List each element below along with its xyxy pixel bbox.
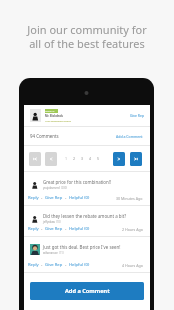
- staticText: Just got this deal. Best price I've seen…: [43, 244, 121, 250]
- button[interactable]: Helpful (0): [69, 262, 90, 268]
- staticText: wilsonaruze: [43, 251, 58, 255]
- button[interactable]: Add a Comment: [116, 134, 143, 139]
- staticText: Mr. Slickdeals: [45, 114, 63, 118]
- button[interactable]: Helpful (0): [69, 195, 90, 201]
- staticText: 2: [73, 156, 76, 161]
- staticText: •: [63, 227, 69, 232]
- staticText: 94 Comments: [30, 133, 59, 139]
- button[interactable]: Helpful (0): [69, 226, 90, 232]
- button[interactable]: Give Rep: [45, 195, 63, 201]
- staticText: (10): [56, 220, 61, 224]
- button[interactable]: Reply: [28, 195, 39, 201]
- button[interactable]: First page: [29, 152, 41, 166]
- button[interactable]: Great price for this combination!!: [24, 172, 150, 206]
- button[interactable]: Previous page: [45, 152, 57, 166]
- staticText: 1234 Reputation Points: [45, 119, 72, 122]
- staticText: (200): [61, 186, 68, 190]
- staticText: 5: [97, 156, 100, 161]
- button[interactable]: 5: [94, 146, 102, 171]
- button[interactable]: Add a Comment: [30, 282, 144, 300]
- staticText: •: [39, 263, 45, 268]
- staticText: 1: [65, 156, 68, 161]
- staticText: Great price for this combination!!: [43, 179, 112, 185]
- staticText: 30 Minutes Ago: [116, 196, 143, 201]
- staticText: Join our community for all of the best f…: [27, 22, 147, 52]
- staticText: •: [63, 196, 69, 201]
- button[interactable]: Just got this deal. Best price I've seen…: [24, 237, 150, 273]
- staticText: youjobserved: [43, 186, 60, 190]
- button[interactable]: Reply: [28, 262, 39, 268]
- button[interactable]: Reply: [28, 226, 39, 232]
- button[interactable]: 1: [62, 146, 70, 171]
- staticText: 3: [81, 156, 84, 161]
- button[interactable]: Did they lessen the rebate amount a bit?: [24, 206, 150, 237]
- staticText: •: [63, 263, 69, 268]
- button[interactable]: Next page: [113, 152, 125, 166]
- staticText: 4 Hours Ago: [122, 263, 143, 268]
- button[interactable]: Give Rep: [45, 226, 63, 232]
- staticText: •: [39, 196, 45, 201]
- button[interactable]: Give Rep: [45, 262, 63, 268]
- staticText: •: [39, 227, 45, 232]
- button[interactable]: ORIGINAL POSTER: [24, 105, 150, 126]
- staticText: 4: [89, 156, 92, 161]
- staticText: ORIGINAL POSTER: [45, 110, 58, 113]
- staticText: Did they lessen the rebate amount a bit?: [43, 213, 127, 219]
- staticText: Add a Comment: [65, 287, 110, 295]
- staticText: (11): [59, 251, 64, 255]
- staticText: 2 Hours Ago: [122, 227, 143, 232]
- button[interactable]: Give Rep: [130, 113, 144, 118]
- button[interactable]: Last page: [130, 152, 142, 166]
- button[interactable]: 2: [70, 146, 78, 171]
- button[interactable]: 4: [86, 146, 94, 171]
- staticText: jeffyobaw: [43, 220, 55, 224]
- button[interactable]: 3: [78, 146, 86, 171]
